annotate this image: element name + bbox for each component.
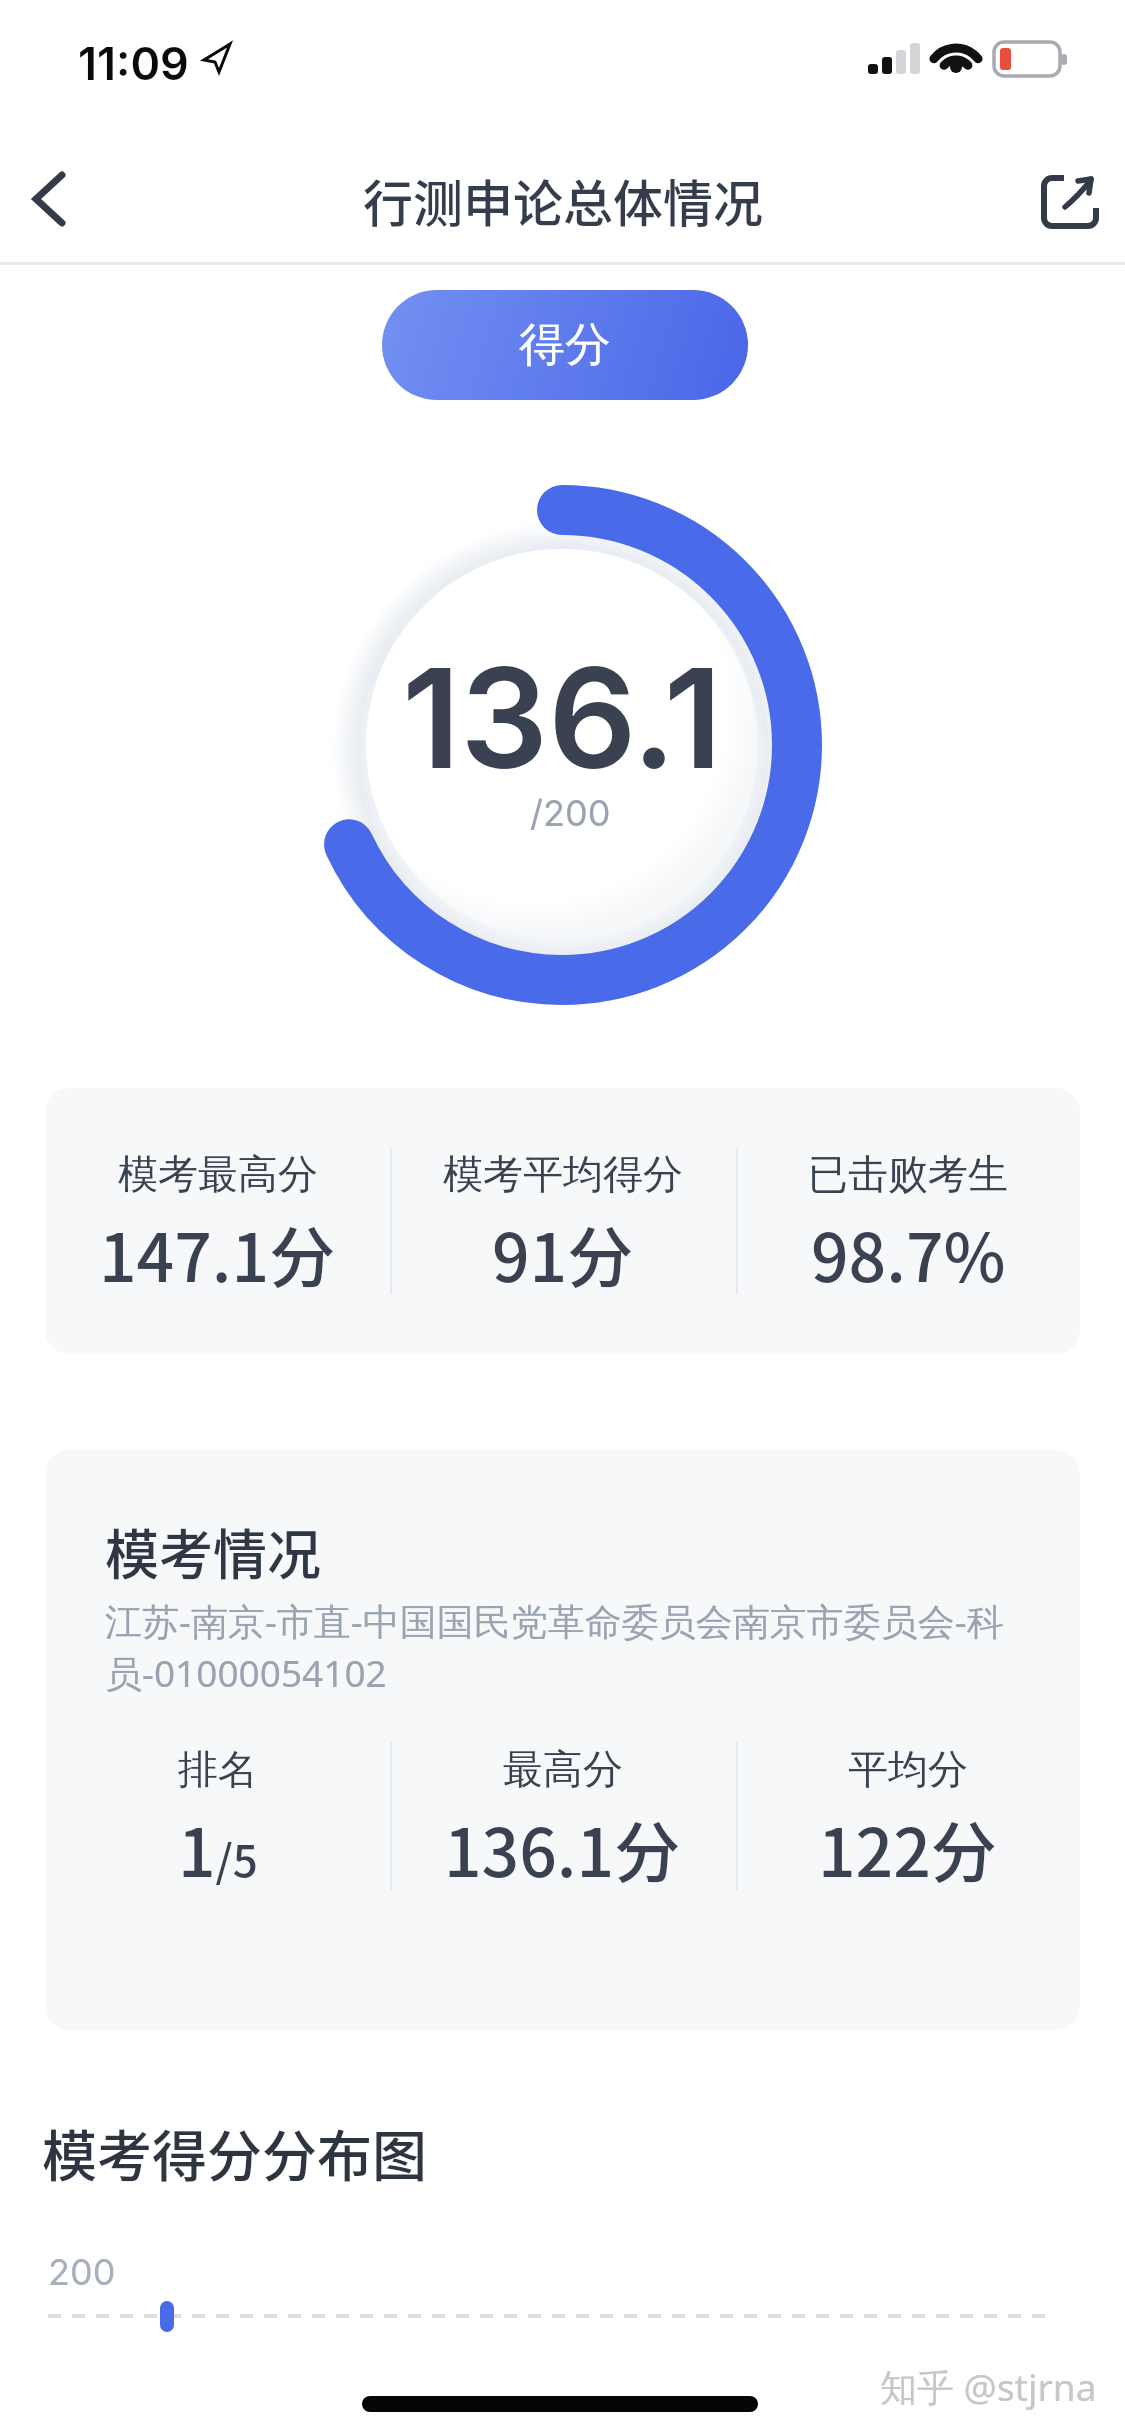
staticText: 模考得分分布图 [42,2112,428,2192]
staticText: 91分 [492,1205,634,1301]
staticText: 平均分 [848,1744,968,1794]
staticText: 行测申论总体情况 [363,164,763,236]
staticText: 排名 [178,1744,258,1794]
staticText: 知乎 @stjrna [880,2361,1097,2412]
staticText: 最高分 [503,1744,623,1794]
button[interactable]: 模考情况 [45,1450,1080,2030]
staticText: 模考情况 [105,1512,321,1590]
button[interactable] [3,150,93,250]
staticText: 122分 [818,1800,997,1896]
staticText: 136.1分 [444,1800,681,1896]
staticText: 98.7% [811,1205,1006,1301]
staticText: 得分 [519,316,611,374]
button[interactable] [1020,150,1120,250]
staticText: 模考最高分 [118,1149,318,1199]
staticText: 1/5 [178,1800,258,1896]
staticText: 江苏-南京-市直-中国国民党革命委员会南京市委员会-科 [105,1595,1004,1646]
staticText: 136.1 [402,634,723,801]
staticText: 模考平均得分 [443,1149,683,1199]
button[interactable]: 模考最高分 [45,1088,1080,1354]
staticText: 147.1分 [99,1205,336,1301]
staticText: 已击败考生 [808,1149,1008,1199]
button[interactable]: 得分 [382,290,748,400]
staticText: /200 [530,791,611,835]
staticText: 200 [48,2250,116,2294]
staticText: 员-01000054102 [105,1647,387,1698]
staticText: 11:09 [78,36,189,90]
